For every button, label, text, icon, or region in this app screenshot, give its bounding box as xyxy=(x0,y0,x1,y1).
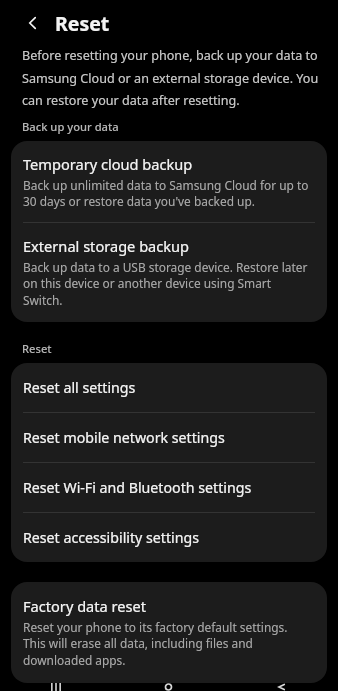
staticText: Before resetting your phone, back up you… xyxy=(22,47,320,108)
button[interactable]: External storage backup xyxy=(11,223,327,322)
staticText: Temporary cloud backup xyxy=(23,154,193,174)
button[interactable]: Back xyxy=(225,683,338,691)
staticText: Reset Wi-Fi and Bluetooth settings xyxy=(23,478,252,497)
button[interactable]: Reset mobile network settings xyxy=(11,413,327,462)
button[interactable]: Recent apps xyxy=(0,683,112,691)
button[interactable]: Temporary cloud backup xyxy=(11,141,327,222)
button[interactable]: Home xyxy=(112,683,225,691)
staticText: Reset your phone to its factory default … xyxy=(23,619,313,668)
staticText: Reset xyxy=(22,341,52,356)
button[interactable]: Back xyxy=(18,8,48,38)
staticText: Reset accessibility settings xyxy=(23,528,200,547)
button[interactable]: Reset all settings xyxy=(11,363,327,412)
staticText: Reset all settings xyxy=(23,378,136,397)
staticText: Reset xyxy=(55,10,110,37)
button[interactable]: Factory data reset xyxy=(11,582,327,683)
staticText: Back up your data xyxy=(22,119,119,134)
staticText: Back up unlimited data to Samsung Cloud … xyxy=(23,177,313,209)
staticText: Back up data to a USB storage device. Re… xyxy=(23,259,313,308)
button[interactable]: Reset accessibility settings xyxy=(11,513,327,562)
button[interactable]: Reset Wi-Fi and Bluetooth settings xyxy=(11,463,327,512)
staticText: External storage backup xyxy=(23,236,190,256)
staticText: Reset mobile network settings xyxy=(23,428,225,447)
staticText: Factory data reset xyxy=(23,596,146,616)
